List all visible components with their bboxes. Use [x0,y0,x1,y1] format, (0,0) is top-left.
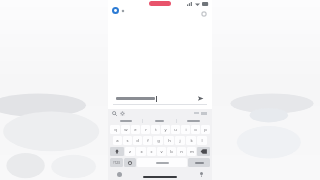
button[interactable]: p [201,125,210,134]
staticText: d [136,138,139,144]
staticText: e [134,127,137,133]
button[interactable]: Emoji [124,158,136,167]
staticText: o [194,127,197,133]
staticText: n [180,149,183,155]
staticText: l [201,138,203,144]
staticText: p [204,127,207,133]
button[interactable]: q [110,125,120,134]
button[interactable]: g [153,136,163,145]
button[interactable]: t [151,125,160,134]
staticText: y [164,127,167,133]
staticText: j [179,138,181,144]
staticText: u [174,127,177,133]
staticText: q [114,127,117,133]
staticText: a [116,138,119,144]
button[interactable]: w [121,125,130,134]
staticText: c [150,149,153,155]
button[interactable]: Voice input [200,172,203,177]
staticText: z [129,149,131,155]
staticText: i [185,127,187,133]
staticText: m [190,149,194,155]
button[interactable]: y [161,125,170,134]
button[interactable]: f [143,136,152,145]
staticText: s [126,138,129,144]
button[interactable]: Send [113,93,207,104]
button[interactable]: b [167,147,176,156]
button[interactable] [177,117,210,124]
staticText: b [170,149,173,155]
other: Send [197,95,204,102]
button[interactable]: Shift [110,147,124,156]
button[interactable]: m [187,147,196,156]
other: App icon [112,7,119,14]
button[interactable]: n [177,147,186,156]
button[interactable]: k [186,136,196,145]
staticText: t [155,127,157,133]
button[interactable]: Keyboard switch [117,172,122,177]
button[interactable]: Settings [120,111,125,116]
button[interactable]: v [157,147,166,156]
button[interactable]: d [133,136,142,145]
button[interactable]: l [197,136,207,145]
button[interactable]: ?123 [110,158,123,167]
button[interactable]: u [171,125,180,134]
staticText: w [124,127,128,133]
staticText: x [140,149,143,155]
button[interactable]: i [181,125,190,134]
button[interactable]: e [131,125,140,134]
staticText: f [147,138,149,144]
button[interactable]: c [147,147,156,156]
button[interactable]: a [113,136,122,145]
button[interactable]: z [125,147,135,156]
button[interactable]: Search [112,111,117,116]
button[interactable]: r [141,125,150,134]
button[interactable]: j [175,136,185,145]
staticText: ?123 [113,161,120,165]
button[interactable]: x [136,147,146,156]
staticText: r [145,127,147,133]
button[interactable]: h [164,136,174,145]
staticText: v [160,149,163,155]
button[interactable]: o [191,125,200,134]
button[interactable] [188,158,210,167]
staticText: h [168,138,171,144]
button[interactable]: Space [137,158,187,167]
button[interactable]: Backspace [197,147,210,156]
button[interactable] [110,117,142,124]
button[interactable] [143,117,176,124]
staticText: g [157,138,160,144]
staticText: k [190,138,193,144]
button[interactable]: s [123,136,132,145]
